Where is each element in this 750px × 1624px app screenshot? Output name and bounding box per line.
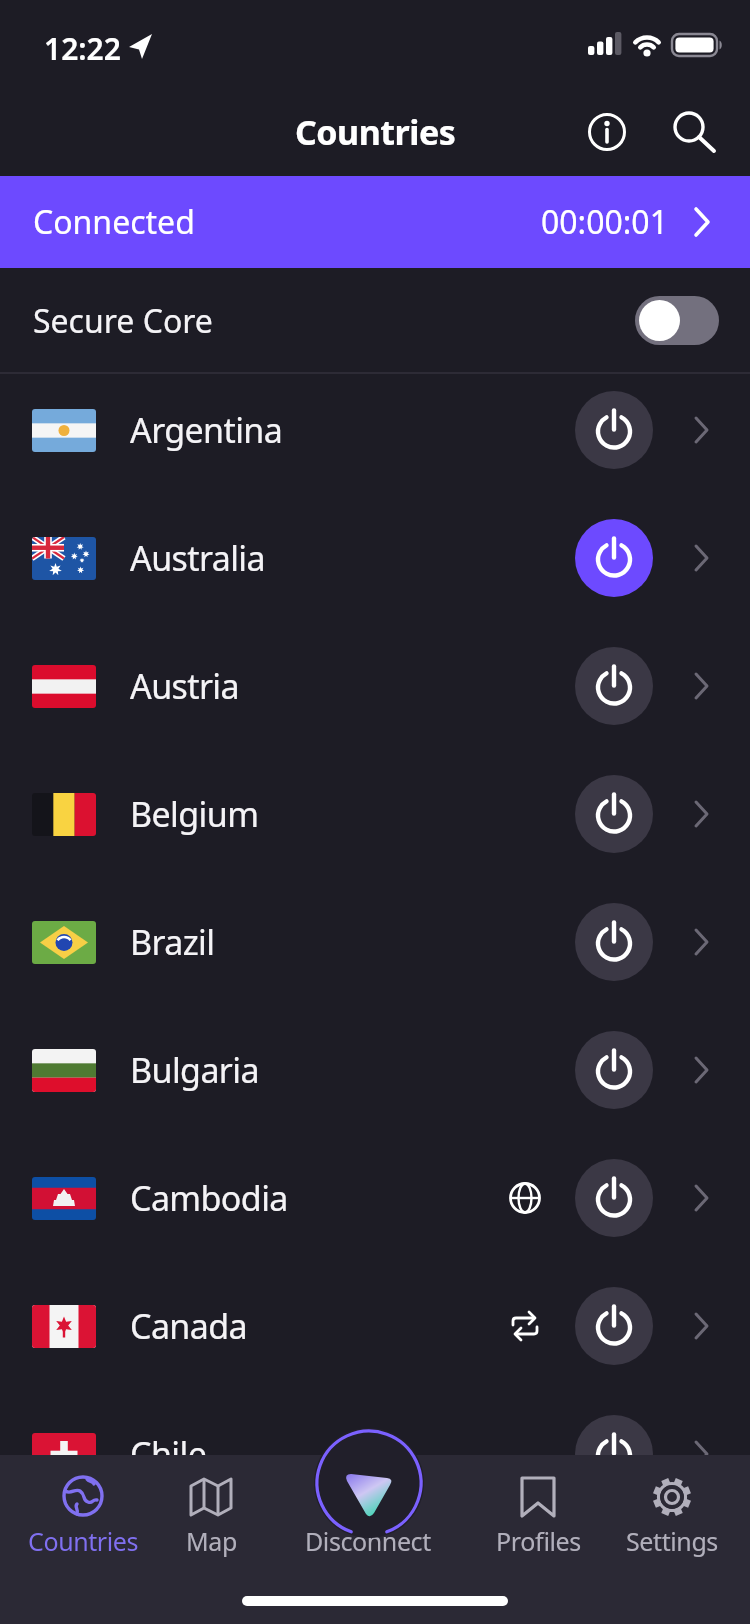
staticText: Argentina xyxy=(130,407,283,453)
staticText: Brazil xyxy=(130,919,215,965)
button[interactable]: Brazil xyxy=(0,878,750,1006)
button[interactable]: Countries xyxy=(8,1455,158,1624)
staticText: Settings xyxy=(626,1524,718,1558)
staticText: Connected xyxy=(33,200,195,244)
staticText: Disconnect xyxy=(305,1524,431,1558)
button[interactable]: Disconnect xyxy=(293,1455,443,1624)
button[interactable]: Bulgaria xyxy=(0,1006,750,1134)
staticText: Countries xyxy=(28,1524,139,1558)
staticText: Map xyxy=(186,1524,237,1558)
button[interactable]: Profiles xyxy=(463,1455,613,1624)
staticText: Profiles xyxy=(496,1524,581,1558)
button[interactable]: Chile xyxy=(0,1390,750,1518)
button[interactable] xyxy=(575,1159,653,1237)
button[interactable] xyxy=(314,1428,424,1538)
button[interactable]: Map xyxy=(136,1455,286,1624)
staticText: 00:00:01 xyxy=(541,200,668,244)
button[interactable] xyxy=(575,1287,653,1365)
button[interactable]: Austria xyxy=(0,622,750,750)
button[interactable]: Canada xyxy=(0,1262,750,1390)
button[interactable]: Belgium xyxy=(0,750,750,878)
button[interactable] xyxy=(635,296,719,345)
button[interactable]: Australia xyxy=(0,494,750,622)
button[interactable] xyxy=(575,391,653,469)
button[interactable]: Settings xyxy=(597,1455,747,1624)
button[interactable] xyxy=(670,108,720,156)
staticText: Bulgaria xyxy=(130,1047,259,1093)
staticText: Chile xyxy=(130,1431,207,1477)
staticText: Australia xyxy=(130,535,265,581)
button[interactable] xyxy=(575,519,653,597)
button[interactable] xyxy=(575,647,653,725)
staticText: 12:22 xyxy=(44,28,121,69)
staticText: Austria xyxy=(130,663,239,709)
staticText: Secure Core xyxy=(33,299,213,343)
staticText: Belgium xyxy=(130,791,259,837)
button[interactable]: Connected xyxy=(0,176,750,268)
button[interactable] xyxy=(575,1031,653,1109)
button[interactable] xyxy=(587,112,627,152)
button[interactable]: Argentina xyxy=(0,366,750,494)
button[interactable]: Secure Core xyxy=(0,268,750,374)
button[interactable] xyxy=(575,903,653,981)
button[interactable]: Cambodia xyxy=(0,1134,750,1262)
staticText: Countries xyxy=(295,109,456,155)
staticText: Cambodia xyxy=(130,1175,288,1221)
button[interactable] xyxy=(575,775,653,853)
button[interactable] xyxy=(575,1415,653,1493)
staticText: Canada xyxy=(130,1303,248,1349)
